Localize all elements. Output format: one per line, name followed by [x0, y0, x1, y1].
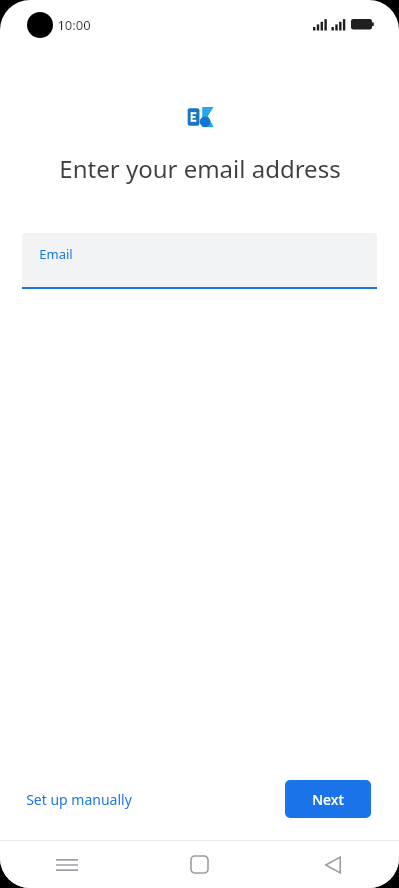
staticText: Set up manually	[26, 790, 132, 809]
staticText: Enter your email address	[59, 152, 341, 185]
button[interactable]: Set up manually	[14, 782, 144, 817]
button[interactable]: Recent apps	[0, 841, 133, 888]
button[interactable]: Next	[285, 780, 371, 818]
staticText: 10:00	[57, 16, 91, 34]
button[interactable]: Email	[22, 233, 377, 289]
staticText: Email	[39, 245, 73, 263]
other: Exchange logo	[186, 105, 214, 129]
staticText: Next	[312, 790, 344, 809]
button[interactable]: Home	[133, 841, 266, 888]
button[interactable]: Back	[266, 841, 399, 888]
